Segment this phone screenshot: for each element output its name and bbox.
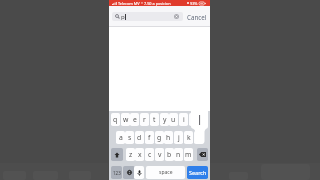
button[interactable]: p (112, 12, 183, 21)
button[interactable]: v (155, 148, 164, 161)
button[interactable]: t (150, 113, 159, 126)
button[interactable]: space (146, 166, 185, 179)
button[interactable]: c (145, 148, 154, 161)
staticText: m (185, 150, 192, 159)
button[interactable]: h (164, 131, 173, 144)
button[interactable]: s (125, 131, 134, 144)
button[interactable]: delete (197, 148, 208, 161)
staticText: y (163, 115, 167, 124)
staticText: u (171, 115, 176, 124)
button[interactable]: y (160, 113, 169, 126)
staticText: Cancel (187, 13, 207, 21)
button[interactable]: b (165, 148, 174, 161)
staticText: i (183, 115, 185, 124)
staticText: k (187, 133, 191, 142)
button[interactable]: globe (123, 166, 135, 179)
button[interactable]: e (130, 113, 139, 126)
staticText: h (166, 133, 171, 142)
staticText: v (158, 150, 162, 159)
button[interactable]: r (140, 113, 149, 126)
button[interactable]: x (135, 148, 144, 161)
button[interactable]: shift (111, 148, 123, 161)
staticText: c (148, 150, 152, 159)
staticText: f (148, 133, 151, 142)
staticText: g (157, 133, 162, 142)
staticText: t (153, 115, 156, 124)
staticText: p (121, 13, 125, 21)
staticText: z (129, 150, 133, 159)
staticText: q (113, 115, 118, 124)
staticText: x (138, 150, 142, 159)
staticText: d (137, 133, 142, 142)
button[interactable]: a (116, 131, 125, 144)
staticText: 93% (190, 1, 198, 6)
button[interactable]: o (189, 113, 198, 126)
button[interactable]: 123 (111, 166, 122, 179)
button[interactable]: k (184, 131, 193, 144)
staticText: 7.50 a posicion (144, 1, 171, 6)
button[interactable]: n (174, 148, 183, 161)
button[interactable]: l (194, 131, 203, 144)
staticText: n (176, 150, 181, 159)
button[interactable]: w (121, 113, 130, 126)
button[interactable]: Clear text (174, 14, 179, 19)
staticText: r (143, 115, 146, 124)
button[interactable]: Search (187, 166, 208, 179)
staticText: space (159, 169, 173, 176)
button[interactable]: i (179, 113, 188, 126)
button[interactable]: d (135, 131, 144, 144)
button[interactable]: Cancel (185, 11, 208, 22)
button[interactable]: g (155, 131, 164, 144)
staticText: 123 (113, 170, 121, 176)
button[interactable]: z (126, 148, 135, 161)
staticText: l (191, 112, 208, 128)
button[interactable]: q (111, 113, 120, 126)
button[interactable]: p (198, 113, 207, 126)
staticText: w (123, 115, 129, 124)
staticText: b (167, 150, 172, 159)
button[interactable]: j (174, 131, 183, 144)
button[interactable]: mic (134, 166, 144, 179)
staticText: Telecom MV (118, 1, 140, 6)
staticText: j (178, 133, 180, 142)
staticText: s (128, 133, 132, 142)
staticText: Search (189, 169, 207, 176)
button[interactable]: f (145, 131, 154, 144)
staticText: p (200, 115, 205, 124)
button[interactable]: u (169, 113, 178, 126)
button[interactable]: m (184, 148, 193, 161)
staticText: e (133, 115, 137, 124)
staticText: a (119, 133, 123, 142)
